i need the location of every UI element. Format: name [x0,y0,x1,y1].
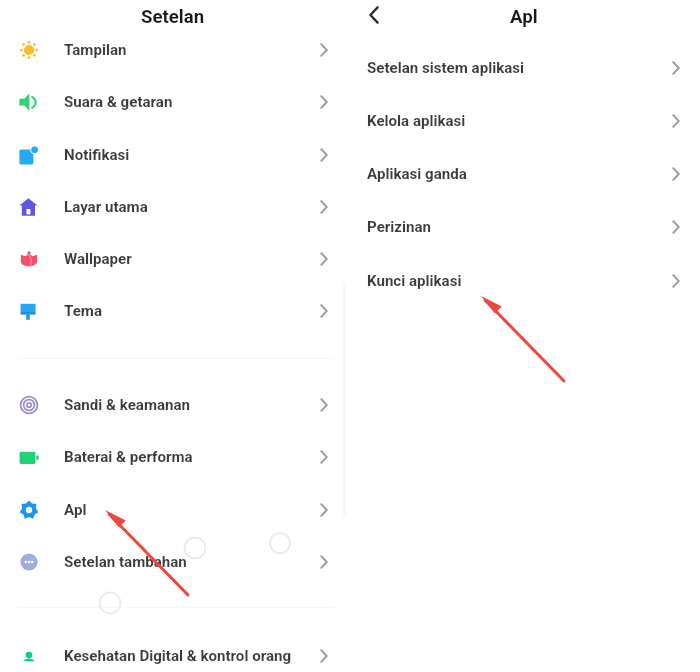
button[interactable]: Setelan [0,0,345,33]
button[interactable]: Tema [0,285,345,337]
button[interactable]: Baterai & performa [0,431,345,483]
staticText: Notifikasi [64,146,130,164]
staticText: Setelan tambahan [64,553,187,571]
staticText: Tampilan [64,41,127,59]
staticText: Apl [510,6,538,28]
staticText: Setelan [141,6,205,28]
button[interactable]: Tampilan [0,24,345,76]
button[interactable]: Back [356,0,392,33]
button[interactable]: Kesehatan Digital & kontrol orang [0,630,345,672]
button[interactable]: Setelan sistem aplikasi [345,42,700,94]
button[interactable]: Kelola aplikasi [345,95,700,147]
button[interactable]: Sandi & keamanan [0,379,345,431]
staticText: Baterai & performa [64,448,193,466]
staticText: Perizinan [367,218,431,236]
staticText: Suara & getaran [64,93,173,111]
staticText: Kunci aplikasi [367,272,462,290]
button[interactable]: Apl [0,484,345,536]
button[interactable]: Aplikasi ganda [345,148,700,200]
button[interactable]: Perizinan [345,201,700,253]
staticText: Sandi & keamanan [64,396,191,414]
button[interactable]: Kunci aplikasi [345,255,700,307]
staticText: Tema [64,302,102,320]
staticText: Setelan sistem aplikasi [367,59,525,77]
button[interactable]: Layar utama [0,181,345,233]
staticText: Apl [64,501,87,519]
button[interactable]: Suara & getaran [0,76,345,128]
button[interactable]: Notifikasi [0,129,345,181]
button[interactable]: Wallpaper [0,233,345,285]
staticText: Wallpaper [64,250,132,268]
staticText: Layar utama [64,198,148,216]
button[interactable]: Setelan tambahan [0,536,345,588]
staticText: Kesehatan Digital & kontrol orang [64,647,292,665]
staticText: Kelola aplikasi [367,112,466,130]
staticText: Aplikasi ganda [367,165,467,183]
